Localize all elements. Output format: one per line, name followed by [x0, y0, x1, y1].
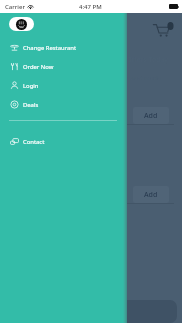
staticText: Contact: [23, 138, 45, 146]
staticText: Add: [144, 111, 158, 121]
button[interactable]: Place order: [0, 300, 177, 323]
staticText: Change Restaurant: [23, 44, 77, 52]
button[interactable]: Add: [133, 186, 169, 203]
staticText: 4:47 PM: [79, 3, 102, 11]
button[interactable]: Add: [133, 107, 169, 124]
staticText: Best Offers Today: [110, 55, 168, 65]
button[interactable]: Change Restaurant: [0, 38, 127, 57]
button[interactable]: Cart: [152, 18, 174, 40]
staticText: Add: [144, 190, 158, 200]
button[interactable]: Login: [0, 76, 127, 95]
button[interactable]: Deals: [0, 95, 127, 114]
staticText: Deals: [23, 101, 39, 109]
staticText: restaurant special: [116, 74, 163, 81]
button[interactable]: Order Now: [0, 57, 127, 76]
button[interactable]: Contact: [0, 132, 127, 151]
staticText: Carrier: [5, 3, 25, 11]
staticText: Login: [23, 82, 39, 90]
staticText: Order Now: [23, 63, 54, 71]
